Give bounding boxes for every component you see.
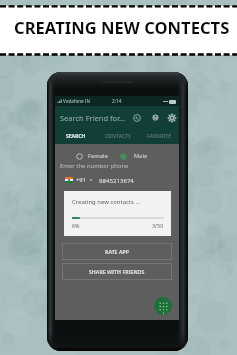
staticText: CONTACTS [105, 133, 131, 140]
button[interactable]: Settings [166, 112, 177, 123]
button[interactable]: Dialpad [154, 297, 172, 315]
button[interactable]: CONTACTS [97, 129, 138, 144]
staticText: 9845213674 [99, 176, 134, 184]
staticText: CREATING NEW CONTECTS [14, 16, 230, 39]
staticText: Male [134, 152, 148, 160]
staticText: RATE APP [105, 248, 129, 255]
staticText: Vodafone IN [63, 98, 90, 104]
staticText: SEARCH [66, 133, 86, 140]
staticText: SHARE WITH FRIENDS [89, 268, 145, 275]
button[interactable]: SHARE WITH FRIENDS [62, 263, 172, 280]
button[interactable]: Help [150, 112, 161, 123]
staticText: +91 [76, 176, 87, 184]
button[interactable]: RATE APP [62, 243, 172, 260]
staticText: 3/50 [152, 222, 164, 229]
button[interactable]: SEARCH [55, 129, 97, 144]
staticText: Enter the number phone [60, 162, 129, 170]
staticText: Female [88, 152, 108, 160]
staticText: 2:14 [112, 98, 122, 105]
button[interactable]: FAVORITE [138, 129, 179, 144]
staticText: FAVORITE [147, 133, 171, 140]
button[interactable]: WhatsApp [131, 112, 142, 123]
staticText: Search Friend for... [60, 113, 126, 123]
staticText: Creating new contacts ... [72, 198, 141, 206]
staticText: 6% [72, 222, 80, 229]
